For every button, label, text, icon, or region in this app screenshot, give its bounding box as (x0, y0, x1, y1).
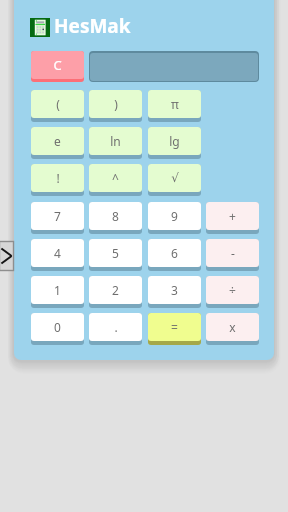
button[interactable]: ln (89, 127, 142, 155)
staticText: ( (56, 96, 60, 112)
button[interactable]: 8 (89, 202, 142, 230)
staticText: 0 (54, 319, 61, 335)
staticText: ! (56, 170, 60, 186)
button[interactable]: √ (148, 164, 201, 192)
button[interactable]: 7 (31, 202, 84, 230)
button[interactable]: Open drawer (0, 241, 14, 271)
staticText: 4 (54, 245, 61, 261)
button[interactable]: Result display (89, 51, 259, 82)
staticText: e (54, 133, 61, 149)
button[interactable]: 9 (148, 202, 201, 230)
button[interactable]: C (31, 51, 84, 79)
staticText: lg (169, 133, 180, 149)
button[interactable]: ( (31, 90, 84, 118)
button[interactable]: - (206, 239, 259, 267)
staticText: ln (110, 133, 121, 149)
staticText: x (229, 319, 236, 335)
staticText: - (231, 245, 235, 261)
staticText: = (171, 319, 178, 335)
staticText: + (229, 208, 236, 224)
button[interactable]: 0 (31, 313, 84, 341)
button[interactable]: 4 (31, 239, 84, 267)
button[interactable]: = (148, 313, 201, 341)
button[interactable]: ÷ (206, 276, 259, 304)
staticText: 8 (112, 208, 119, 224)
button[interactable]: lg (148, 127, 201, 155)
staticText: ^ (112, 170, 119, 186)
button[interactable]: ^ (89, 164, 142, 192)
button[interactable]: + (206, 202, 259, 230)
staticText: 6 (171, 245, 178, 261)
staticText: √ (171, 171, 179, 185)
button[interactable]: 5 (89, 239, 142, 267)
staticText: 2 (112, 282, 119, 298)
button[interactable]: 1 (31, 276, 84, 304)
staticText: . (114, 319, 118, 335)
button[interactable]: . (89, 313, 142, 341)
button[interactable]: 3 (148, 276, 201, 304)
staticText: ) (114, 96, 118, 112)
button[interactable]: e (31, 127, 84, 155)
button[interactable]: ! (31, 164, 84, 192)
staticText: 9 (171, 208, 178, 224)
staticText: 3 (171, 282, 178, 298)
staticText: π (171, 96, 179, 112)
button[interactable]: x (206, 313, 259, 341)
staticText: 7 (54, 208, 61, 224)
staticText: 5 (112, 245, 119, 261)
staticText: 1 (54, 282, 61, 298)
staticText: ÷ (229, 282, 236, 298)
button[interactable]: π (148, 90, 201, 118)
button[interactable]: 6 (148, 239, 201, 267)
button[interactable]: 2 (89, 276, 142, 304)
button[interactable]: ) (89, 90, 142, 118)
staticText: C (53, 56, 62, 74)
staticText: HesMak (54, 13, 131, 39)
